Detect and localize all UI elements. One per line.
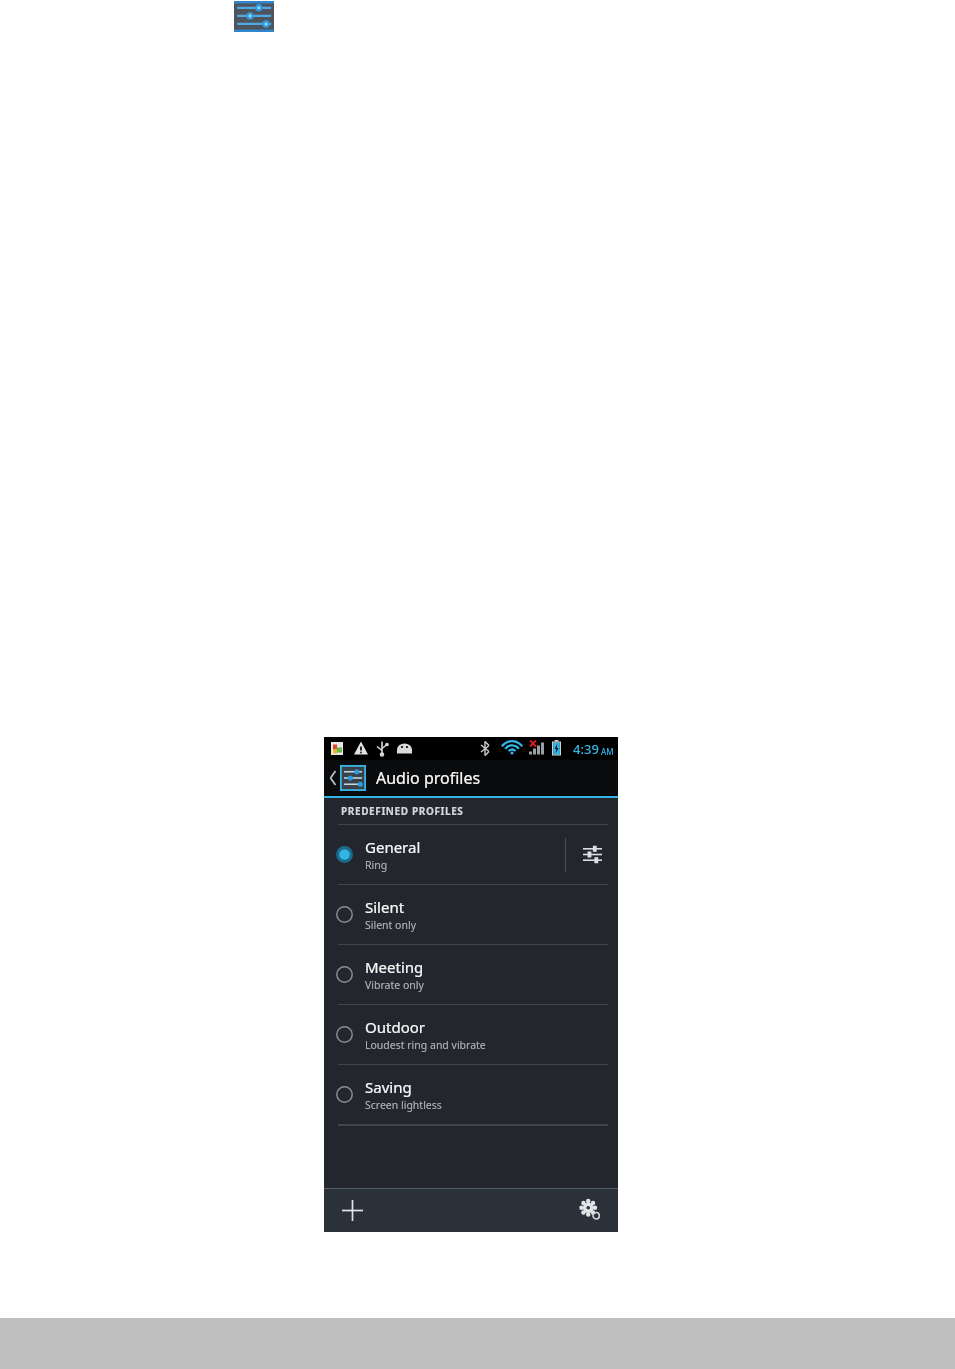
staticText: Saving	[365, 1077, 412, 1097]
button[interactable]: General	[324, 825, 618, 884]
staticText: Meeting	[365, 957, 424, 977]
staticText: Vibrate only	[365, 978, 424, 992]
staticText: 4:39	[573, 740, 599, 758]
button[interactable]: Saving	[324, 1065, 618, 1124]
staticText: Silent	[365, 897, 405, 917]
button[interactable]: Meeting	[324, 945, 618, 1004]
staticText: Screen lightless	[365, 1098, 442, 1112]
staticText: PREDEFINED PROFILES	[341, 804, 464, 818]
button[interactable]: Reset profiles	[570, 1190, 610, 1230]
staticText: Silent only	[365, 918, 417, 932]
staticText: AM	[601, 746, 614, 757]
staticText: Ring	[365, 858, 388, 872]
staticText: Audio profiles	[376, 767, 481, 789]
staticText: Outdoor	[365, 1017, 425, 1037]
button[interactable]: Add profile	[332, 1190, 372, 1230]
staticText: Loudest ring and vibrate	[365, 1038, 486, 1052]
button[interactable]: Edit profile settings	[566, 825, 618, 884]
button[interactable]: Outdoor	[324, 1005, 618, 1064]
button[interactable]: Audio profiles	[324, 760, 618, 796]
button[interactable]: Silent	[324, 885, 618, 944]
staticText: General	[365, 837, 421, 857]
